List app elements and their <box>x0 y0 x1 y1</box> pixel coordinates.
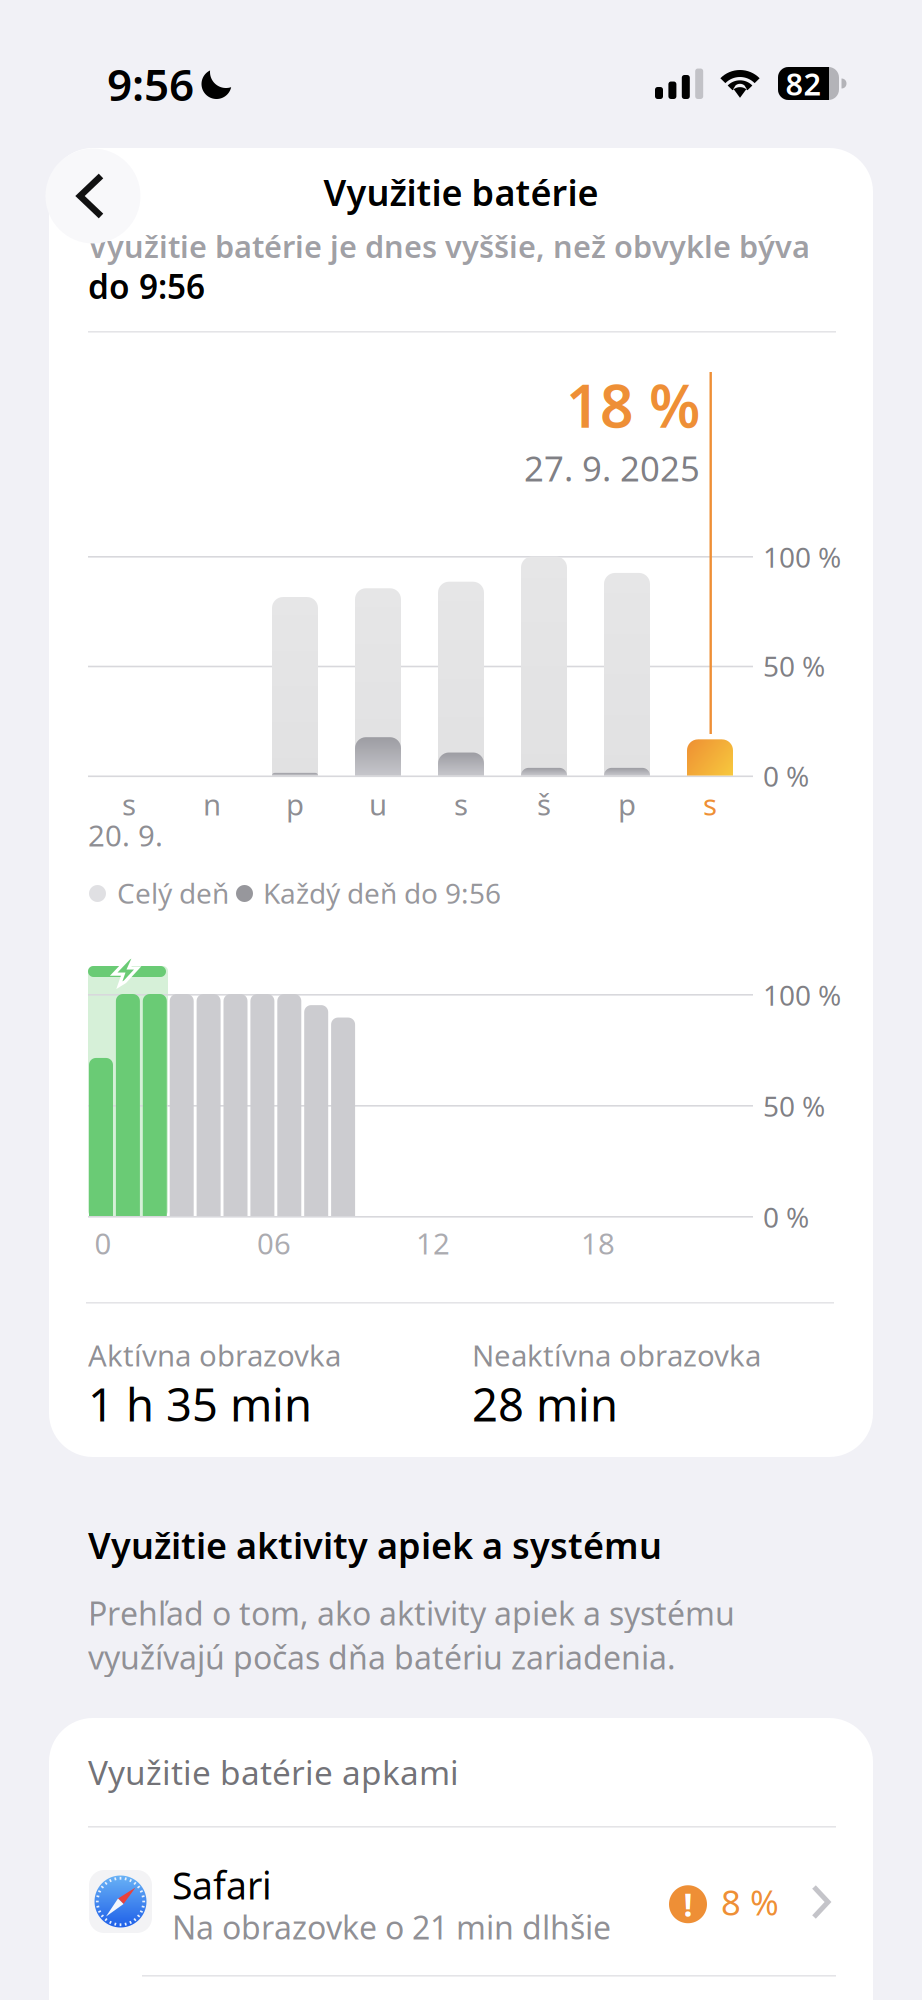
staticText: Neaktívna obrazovka <box>472 1335 761 1374</box>
staticText: 1 h 35 min <box>88 1374 312 1434</box>
staticText: Na obrazovke o 21 min dlhšie <box>172 1906 611 1948</box>
staticText: 82 <box>785 63 821 104</box>
staticText: Využitie batérie je dnes vyššie, než obv… <box>88 226 810 266</box>
staticText: Safari <box>172 1860 272 1910</box>
staticText: u <box>369 784 387 823</box>
staticText: 9:56 <box>107 55 194 113</box>
staticText: s <box>454 784 468 823</box>
staticText: Využitie aktivity apiek a systému <box>88 1521 662 1569</box>
staticText: n <box>203 784 221 823</box>
staticText: Celý deň <box>117 874 229 912</box>
staticText: 50 % <box>763 647 825 685</box>
staticText: 8 % <box>721 1879 779 1925</box>
staticText: 27. 9. 2025 <box>524 445 700 491</box>
staticText: Využitie batérie apkami <box>88 1750 459 1794</box>
staticText: 100 % <box>763 538 841 576</box>
button[interactable]: Späť <box>45 148 140 243</box>
staticText: 28 min <box>472 1374 618 1434</box>
staticText: 0 % <box>763 1198 809 1236</box>
staticText: s <box>703 784 717 823</box>
staticText: Každý deň do 9:56 <box>263 874 501 912</box>
staticText: Prehľad o tom, ako aktivity apiek a syst… <box>88 1592 735 1634</box>
staticText: 0 % <box>763 757 809 795</box>
staticText: ! <box>683 1883 692 1925</box>
staticText: 50 % <box>763 1087 825 1125</box>
button[interactable]: Safari <box>49 1828 873 1973</box>
staticText: Využitie batérie <box>323 168 598 216</box>
staticText: s <box>122 784 136 823</box>
staticText: 100 % <box>763 976 841 1014</box>
staticText: využívajú počas dňa batériu zariadenia. <box>88 1636 676 1678</box>
staticText: 06 <box>257 1223 291 1262</box>
staticText: 18 <box>581 1223 615 1262</box>
staticText: 18 % <box>566 366 700 444</box>
staticText: do 9:56 <box>88 264 205 308</box>
staticText: p <box>618 784 636 823</box>
staticText: š <box>537 784 551 823</box>
staticText: Aktívna obrazovka <box>88 1335 341 1374</box>
staticText: 0 <box>94 1223 111 1262</box>
staticText: 12 <box>416 1223 450 1262</box>
staticText: 20. 9. <box>88 815 163 854</box>
staticText: p <box>286 784 304 823</box>
